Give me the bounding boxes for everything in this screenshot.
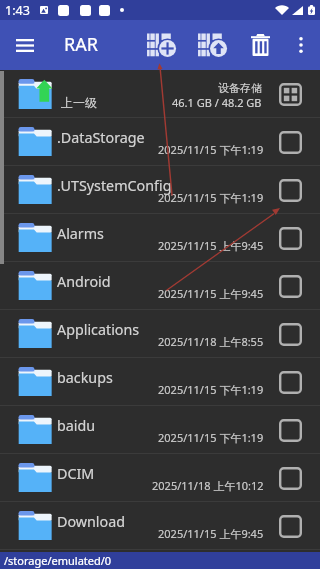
staticText: 2025/11/18 上午8:55: [158, 334, 264, 349]
button[interactable]: baidu: [0, 406, 320, 454]
button[interactable]: Select backups: [278, 370, 302, 394]
staticText: 设备存储: [218, 81, 262, 95]
button[interactable]: DCIM: [0, 454, 320, 502]
button[interactable]: Switch to grid view: [278, 82, 302, 106]
staticText: RAR: [64, 32, 98, 57]
button[interactable]: Android: [0, 262, 320, 310]
button[interactable]: Add to archive: [139, 20, 183, 70]
staticText: .UTSystemConfig: [57, 176, 172, 195]
staticText: 2025/11/15 下午1:19: [158, 142, 264, 157]
button[interactable]: Select .UTSystemConfig: [278, 178, 302, 202]
button[interactable]: Select Alarms: [278, 226, 302, 250]
button[interactable]: Alarms: [0, 214, 320, 262]
staticText: Download: [57, 512, 126, 531]
button[interactable]: Delete: [239, 20, 281, 70]
staticText: /storage/emulated/0: [4, 553, 112, 568]
button[interactable]: backups: [0, 358, 320, 406]
staticText: 2025/11/15 下午1:19: [158, 190, 264, 205]
staticText: Applications: [57, 320, 140, 339]
staticText: 2025/11/18 上午10:12: [152, 478, 264, 493]
button[interactable]: .DataStorage: [0, 118, 320, 166]
button[interactable]: Select baidu: [278, 418, 302, 442]
button[interactable]: Select Android: [278, 274, 302, 298]
button[interactable]: Applications: [0, 310, 320, 358]
staticText: 1:43: [5, 2, 30, 19]
button[interactable]: More options: [282, 20, 320, 70]
staticText: 2025/11/15 上午9:45: [158, 286, 264, 301]
button[interactable]: .UTSystemConfig: [0, 166, 320, 214]
button[interactable]: 上一级: [0, 70, 320, 118]
button[interactable]: Download: [0, 502, 320, 550]
button[interactable]: Select .DataStorage: [278, 130, 302, 154]
staticText: 上一级: [61, 95, 97, 110]
staticText: backups: [57, 368, 113, 387]
staticText: 46.1 GB / 48.2 GB: [172, 95, 262, 110]
staticText: 2025/11/15 下午1:19: [158, 382, 264, 397]
button[interactable]: Select DCIM: [278, 466, 302, 490]
staticText: .DataStorage: [57, 128, 145, 147]
button[interactable]: /storage/emulated/0: [0, 552, 320, 569]
staticText: 2025/11/15 上午9:45: [158, 238, 264, 253]
staticText: 2025/11/15 下午1:19: [158, 430, 264, 445]
staticText: Android: [57, 272, 111, 291]
button[interactable]: Extract archive: [190, 20, 234, 70]
staticText: baidu: [57, 416, 96, 435]
button[interactable]: Select Download: [278, 514, 302, 538]
staticText: DCIM: [57, 464, 95, 483]
button[interactable]: Open navigation menu: [0, 20, 50, 70]
button[interactable]: Select Applications: [278, 322, 302, 346]
staticText: 2025/11/15 上午9:45: [158, 526, 264, 541]
staticText: Alarms: [57, 224, 104, 243]
